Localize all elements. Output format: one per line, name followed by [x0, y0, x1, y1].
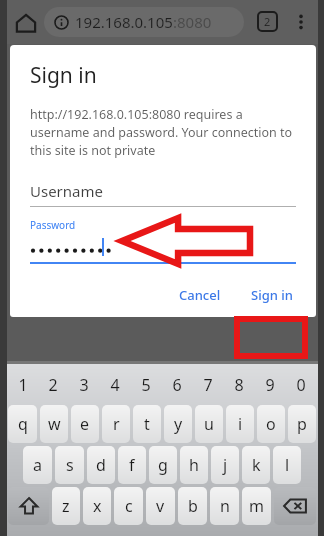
button[interactable]: t	[133, 405, 161, 443]
staticText: 2	[264, 14, 271, 29]
button[interactable]: b	[178, 487, 207, 525]
staticText: 3	[79, 374, 89, 396]
button[interactable]: Username	[30, 181, 296, 207]
staticText: w	[48, 413, 61, 435]
staticText: a	[33, 454, 42, 476]
staticText: :8080	[173, 12, 212, 32]
staticText: i	[238, 413, 243, 435]
staticText: 192.168.0.105	[75, 12, 173, 32]
staticText: m	[249, 495, 264, 517]
button[interactable]: u	[195, 405, 223, 443]
button[interactable]: 7	[192, 368, 223, 402]
button[interactable]: 3	[68, 368, 99, 402]
staticText: 4	[110, 374, 120, 396]
button[interactable]: m	[242, 487, 271, 525]
staticText: g	[158, 454, 168, 476]
button[interactable]: s	[55, 446, 84, 484]
button[interactable]: 192.168.0.105	[44, 7, 244, 37]
button[interactable]: h	[180, 446, 208, 484]
button[interactable]: 5	[130, 368, 161, 402]
staticText: v	[156, 495, 165, 517]
staticText: l	[285, 454, 290, 476]
staticText: q	[18, 413, 28, 435]
button[interactable]: l	[273, 446, 301, 484]
staticText: y	[174, 413, 183, 435]
staticText: 2	[48, 374, 58, 396]
staticText: Cancel	[179, 286, 221, 304]
staticText: Sign in	[30, 61, 97, 90]
button[interactable]: x	[83, 487, 111, 525]
staticText: f	[129, 454, 135, 476]
staticText: Sign in	[251, 286, 293, 304]
staticText: r	[113, 413, 120, 435]
button[interactable]: Tabs, 2 open	[258, 12, 277, 31]
staticText: k	[252, 454, 261, 476]
staticText: Password	[30, 218, 76, 232]
button[interactable]: z	[52, 487, 80, 525]
button[interactable]: 1	[8, 368, 38, 402]
button[interactable]: j	[211, 446, 239, 484]
staticText: x	[93, 495, 102, 517]
button[interactable]: More options	[291, 12, 311, 32]
staticText: n	[220, 495, 230, 517]
button[interactable]: c	[114, 487, 143, 525]
staticText: u	[204, 413, 214, 435]
button[interactable]: p	[288, 405, 316, 443]
button[interactable]: f	[118, 446, 146, 484]
staticText: 7	[203, 374, 213, 396]
button[interactable]: e	[71, 405, 99, 443]
button[interactable]: Backspace	[274, 487, 316, 525]
button[interactable]: n	[210, 487, 239, 525]
button[interactable]: Sign in	[241, 280, 303, 310]
staticText: Username	[30, 181, 103, 201]
staticText: http://192.168.0.105:8080 requires a use…	[30, 106, 296, 159]
staticText: 1	[18, 374, 28, 396]
button[interactable]: w	[40, 405, 68, 443]
button[interactable]: 8	[223, 368, 254, 402]
button[interactable]: r	[102, 405, 130, 443]
button[interactable]: g	[149, 446, 177, 484]
button[interactable]: i	[226, 405, 254, 443]
button[interactable]: d	[87, 446, 115, 484]
button[interactable]: o	[257, 405, 285, 443]
button[interactable]: 2	[38, 368, 68, 402]
staticText: 0	[296, 374, 306, 396]
staticText: d	[96, 454, 106, 476]
button[interactable]: Home	[14, 11, 38, 35]
button[interactable]: 4	[99, 368, 130, 402]
button[interactable]: y	[164, 405, 192, 443]
other: Shift	[18, 495, 40, 517]
button[interactable]: k	[242, 446, 270, 484]
button[interactable]: Password	[30, 218, 296, 264]
button[interactable]: Cancel	[169, 280, 231, 310]
staticText: e	[80, 413, 90, 435]
button[interactable]: q	[8, 405, 37, 443]
other: Backspace	[282, 493, 308, 519]
staticText: 5	[141, 374, 151, 396]
staticText: o	[266, 413, 276, 435]
staticText: b	[188, 495, 198, 517]
button[interactable]: a	[23, 446, 52, 484]
staticText: j	[223, 454, 228, 476]
staticText: h	[189, 454, 199, 476]
staticText: c	[125, 495, 133, 517]
button[interactable]: 0	[285, 368, 316, 402]
staticText: s	[66, 454, 74, 476]
staticText: t	[144, 413, 150, 435]
button[interactable]: v	[146, 487, 175, 525]
button[interactable]: 6	[161, 368, 192, 402]
button[interactable]: 9	[254, 368, 285, 402]
staticText: p	[297, 413, 307, 435]
button[interactable]: Shift	[8, 487, 49, 525]
staticText: 8	[234, 374, 244, 396]
staticText: 9	[265, 374, 275, 396]
staticText: 6	[172, 374, 182, 396]
staticText: z	[62, 495, 70, 517]
